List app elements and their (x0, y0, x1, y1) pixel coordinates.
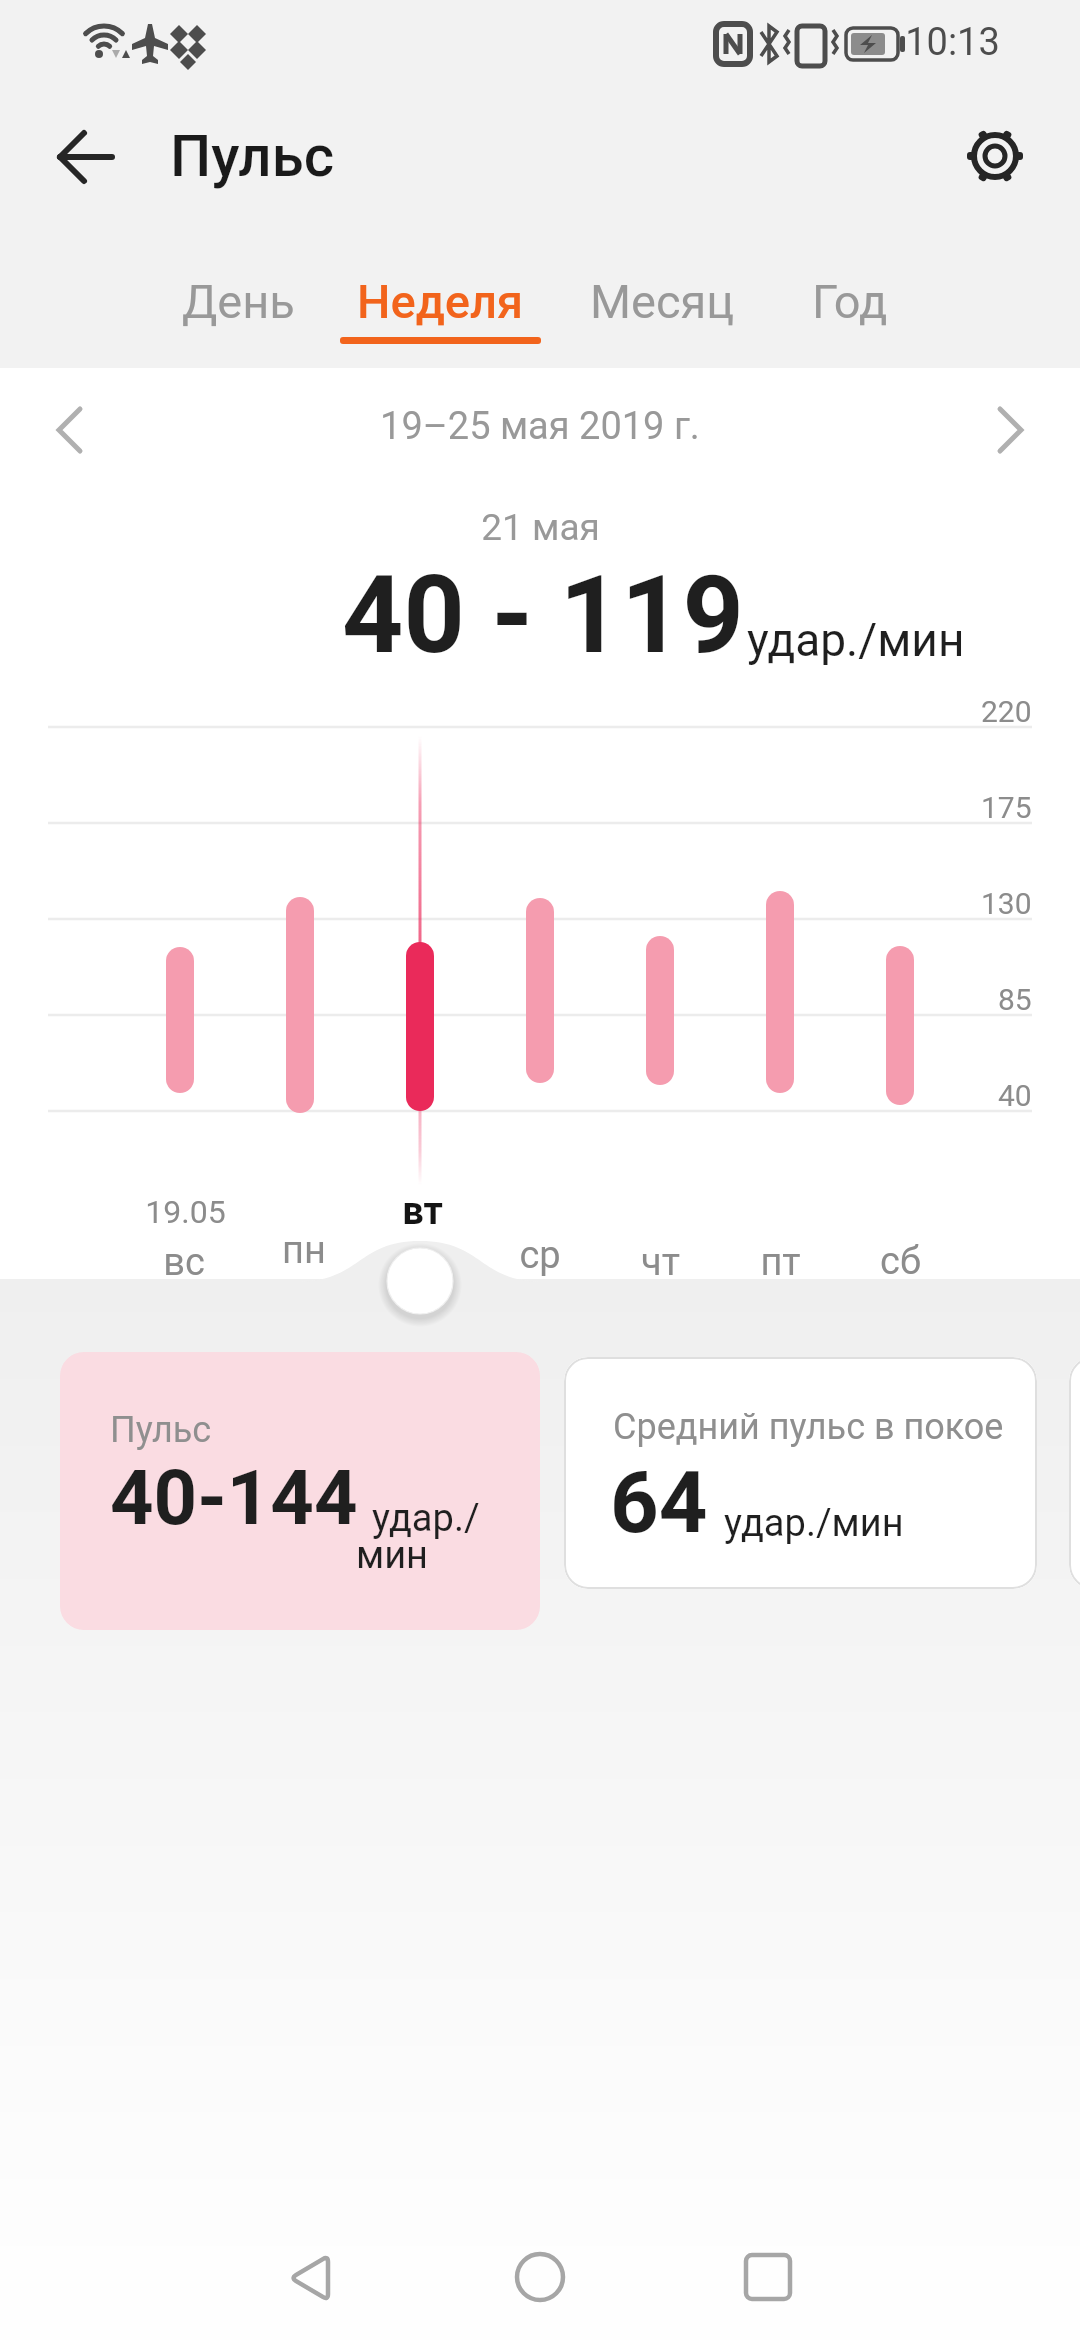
staticText: 40-144 (110, 1453, 358, 1542)
staticText: Пульс (170, 122, 335, 190)
staticText: удар./ (372, 1496, 480, 1541)
staticText: 40 (998, 1078, 1032, 1113)
staticText: 85 (998, 982, 1032, 1017)
staticText: Месяц (590, 274, 735, 329)
staticText: 21 мая (481, 506, 600, 549)
staticText: 220 (981, 694, 1032, 729)
staticText: 19.05 (145, 1193, 226, 1231)
button[interactable] (40, 116, 130, 196)
staticText: 19–25 мая 2019 г. (380, 404, 700, 449)
button[interactable]: Неделя (340, 258, 540, 344)
staticText: День (182, 274, 295, 329)
button[interactable] (500, 2238, 580, 2318)
staticText: 10:13 (905, 20, 1000, 65)
staticText: ср (519, 1233, 561, 1278)
button[interactable]: Год (775, 258, 925, 344)
staticText: мин (356, 1533, 429, 1578)
staticText: удар./мин (747, 613, 965, 667)
button[interactable] (387, 1248, 453, 1314)
staticText: вс (163, 1240, 205, 1285)
staticText: 64 (610, 1453, 708, 1553)
staticText: удар./мин (724, 1501, 904, 1546)
staticText: чт (641, 1240, 680, 1285)
staticText: пн (282, 1228, 326, 1273)
staticText: Пульс (110, 1409, 212, 1451)
button[interactable]: День (150, 258, 327, 344)
button[interactable] (270, 2238, 350, 2318)
button[interactable]: Месяц (562, 258, 762, 344)
staticText: 175 (981, 790, 1032, 825)
button[interactable]: Пульс (60, 1352, 540, 1630)
staticText: 130 (981, 886, 1032, 921)
button[interactable] (30, 395, 110, 465)
staticText: Год (812, 274, 888, 329)
staticText: сб (880, 1239, 921, 1284)
staticText: Неделя (357, 274, 524, 329)
button[interactable] (970, 395, 1050, 465)
staticText: 40 - 119 (342, 553, 744, 678)
staticText: Средний пульс в покое (613, 1406, 1004, 1448)
staticText: пт (760, 1240, 801, 1285)
staticText: вт (402, 1189, 443, 1234)
button[interactable] (955, 116, 1035, 196)
button[interactable] (730, 2238, 810, 2318)
button[interactable]: Средний пульс в покое (564, 1357, 1037, 1589)
